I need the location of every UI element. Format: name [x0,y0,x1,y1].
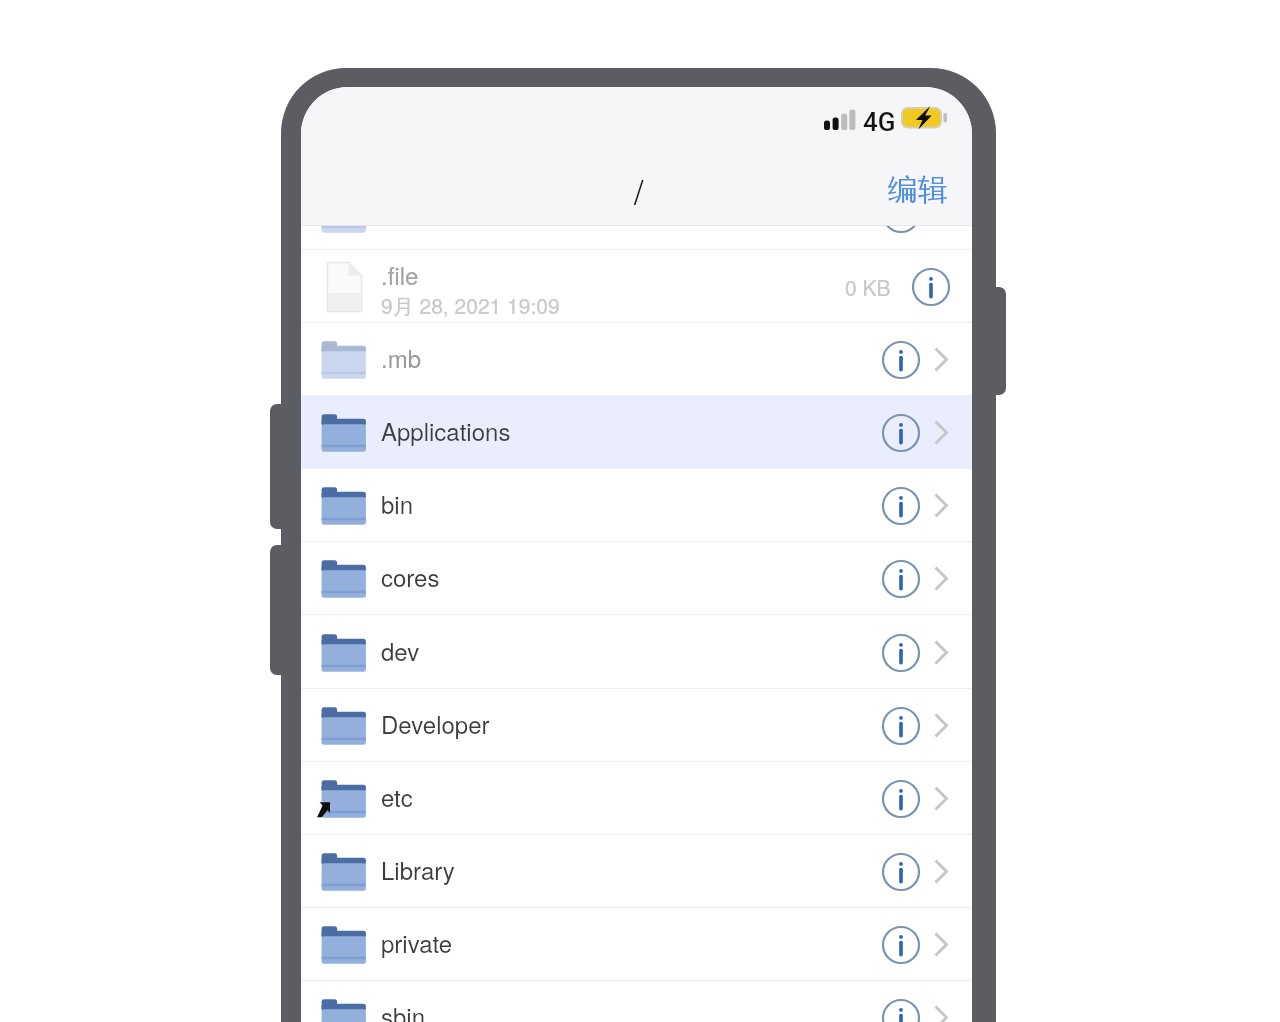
button[interactable]: File info [879,777,923,821]
staticText: 4G [863,107,896,137]
button[interactable]: Applications [301,396,972,469]
staticText: bin [381,486,414,520]
staticText: dev [381,633,420,667]
button[interactable]: File info [879,338,923,382]
staticText: Developer [381,706,490,740]
button[interactable]: File info [879,704,923,748]
staticText: 编辑 [888,171,948,209]
staticText: sbin [381,998,426,1022]
button[interactable]: File info [909,265,953,309]
button[interactable]: 编辑 [888,171,948,209]
button[interactable]: File info [879,923,923,967]
button[interactable]: private [301,908,972,981]
button[interactable]: cores [301,542,972,615]
staticText: 9月 28, 2021 19:09 [381,290,560,320]
staticText: .mb [381,340,422,374]
staticText: cores [381,559,440,593]
button[interactable]: Library [301,835,972,908]
staticText: Library [381,852,455,886]
staticText: / [634,166,644,215]
button[interactable]: File info [879,484,923,528]
staticText: etc [381,779,413,813]
button[interactable]: File info [879,192,923,236]
staticText: 0 KB [845,272,891,302]
button[interactable]: File info [879,557,923,601]
button[interactable]: sbin [301,981,972,1022]
button[interactable]: .file [301,250,972,323]
button[interactable]: etc [301,762,972,835]
button[interactable]: Developer [301,689,972,762]
button[interactable]: File info [301,177,972,250]
staticText: .file [381,257,419,291]
staticText: Applications [381,413,511,447]
button[interactable]: dev [301,616,972,689]
button[interactable]: File info [879,631,923,675]
button[interactable]: File info [879,996,923,1022]
button[interactable]: File info [879,411,923,455]
staticText: private [381,925,453,959]
button[interactable]: .mb [301,323,972,396]
button[interactable]: File info [879,850,923,894]
button[interactable]: bin [301,469,972,542]
